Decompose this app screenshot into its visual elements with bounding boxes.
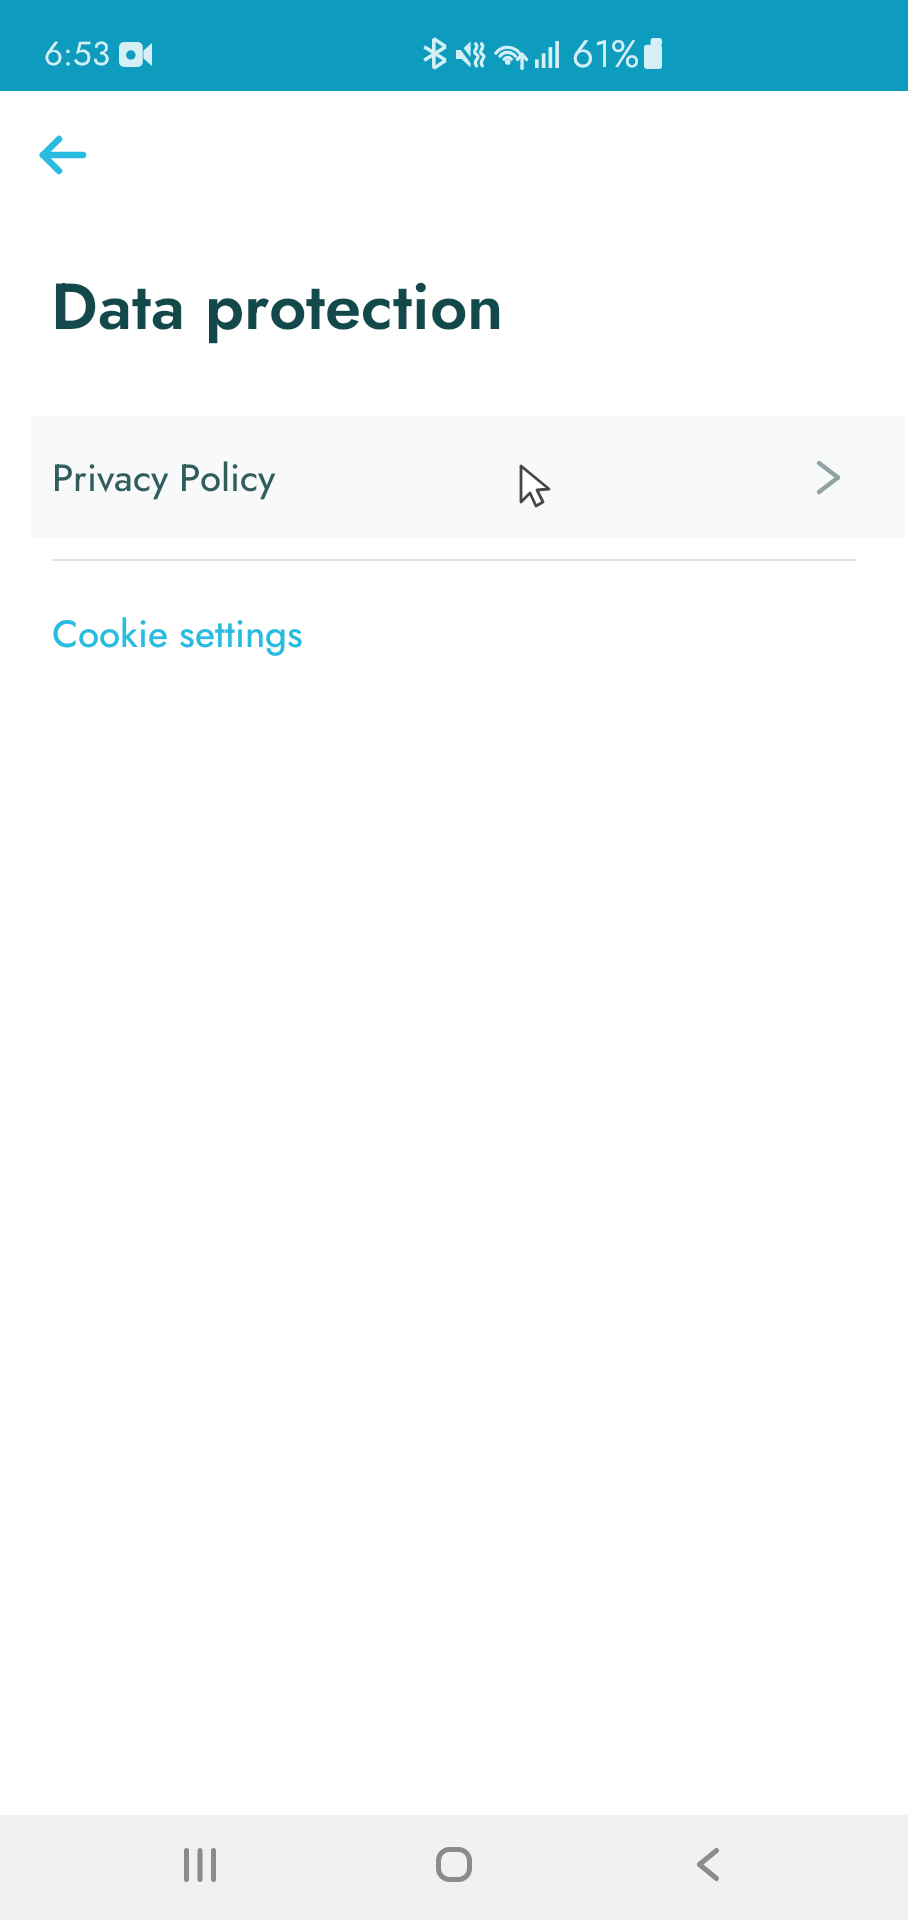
button[interactable]: Back [16,108,109,201]
button[interactable]: Recent apps [150,1819,250,1910]
staticText: Data protection [51,283,503,353]
staticText: Cookie settings [52,620,303,661]
button[interactable]: Home [404,1819,504,1910]
button[interactable]: Back [658,1819,758,1910]
staticText: 61% [572,40,639,81]
staticText: Privacy Policy [52,464,275,505]
staticText: 6:53 [44,42,110,77]
button[interactable]: Privacy Policy [31,416,905,538]
button[interactable]: Cookie settings [52,620,303,661]
